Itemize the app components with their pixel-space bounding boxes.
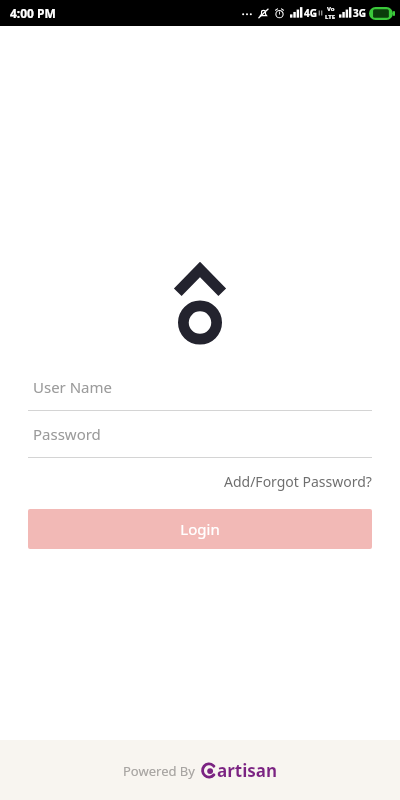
- staticText: Vo: [327, 5, 335, 13]
- button[interactable]: Login: [28, 509, 372, 549]
- staticText: Powered By: [123, 762, 195, 780]
- staticText: 3G: [353, 6, 366, 20]
- button[interactable]: Add/Forgot Password?: [224, 468, 372, 495]
- staticText: User Name: [33, 377, 113, 397]
- button[interactable]: User Name: [28, 364, 372, 411]
- staticText: 4:00 PM: [10, 5, 56, 21]
- staticText: LTE: [325, 13, 336, 21]
- staticText: 4G: [304, 6, 317, 20]
- staticText: Password: [33, 424, 101, 444]
- staticText: artisan: [217, 759, 278, 782]
- staticText: Login: [180, 519, 220, 539]
- button[interactable]: Password: [28, 411, 372, 458]
